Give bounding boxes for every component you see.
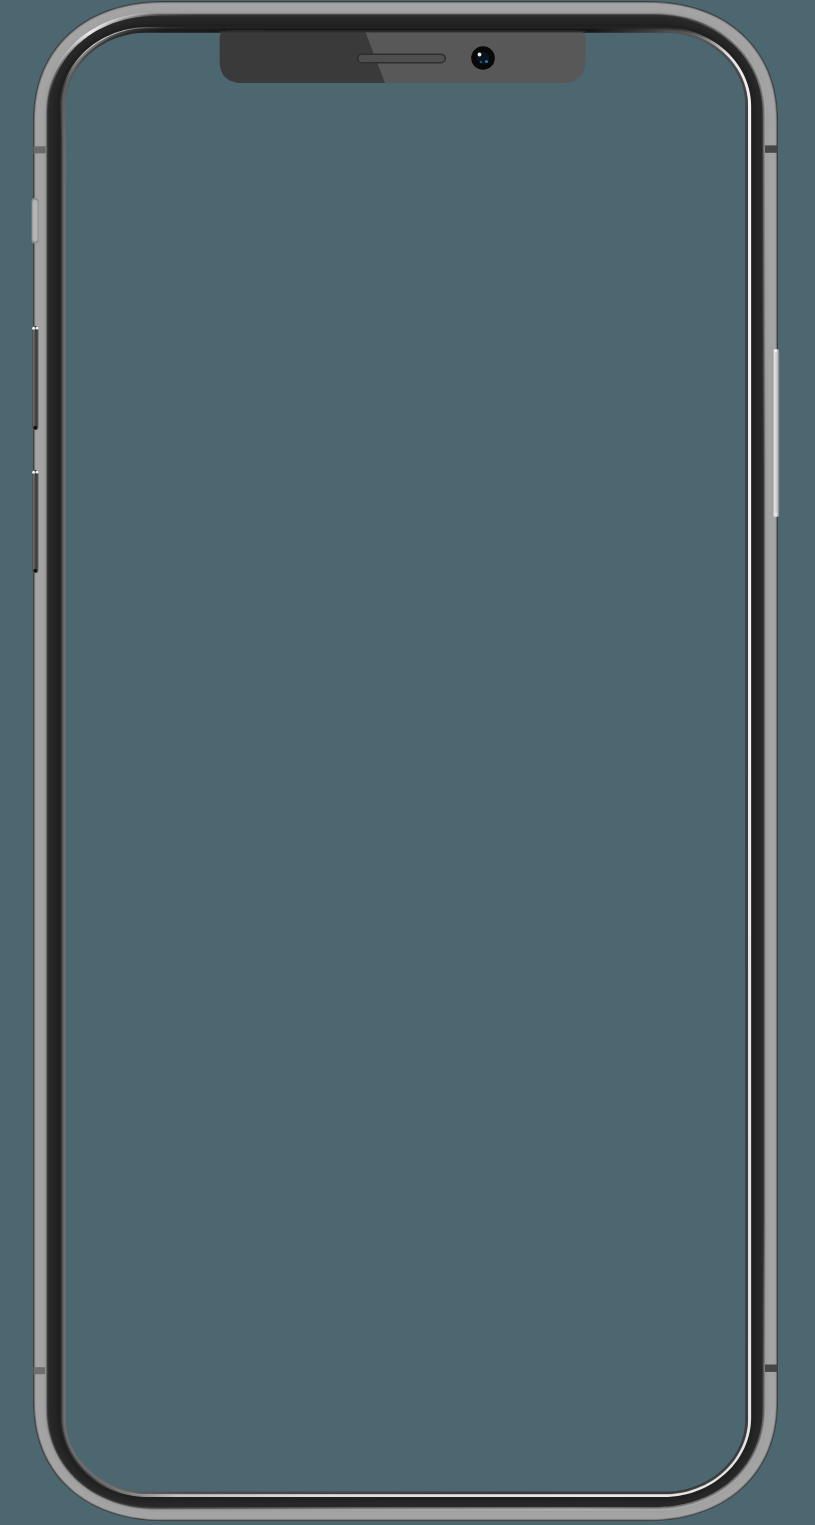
- button[interactable]: Volume down: [32, 470, 40, 573]
- button[interactable]: Phone screen: [66, 33, 745, 1492]
- button[interactable]: Volume up: [32, 326, 40, 430]
- button[interactable]: Power button: [771, 349, 780, 517]
- button[interactable]: Silent mode switch: [32, 198, 40, 244]
